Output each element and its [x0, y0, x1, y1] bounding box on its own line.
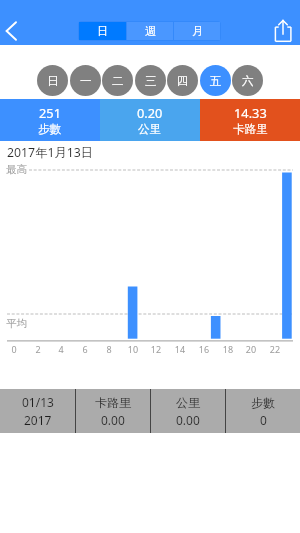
staticText: 日	[97, 24, 108, 38]
button[interactable]: 步數	[226, 389, 300, 433]
staticText: 卡路里	[233, 122, 268, 137]
staticText: 22	[265, 343, 285, 355]
staticText: 18	[218, 343, 238, 355]
staticText: 平均	[6, 317, 27, 330]
staticText: 2	[28, 343, 48, 355]
staticText: 4	[51, 343, 71, 355]
staticText: 月	[192, 24, 203, 38]
button[interactable]: 五	[200, 65, 231, 96]
button[interactable]: 日	[37, 65, 68, 96]
button[interactable]: 週	[127, 22, 173, 40]
staticText: 8	[99, 343, 119, 355]
staticText: 14.33	[234, 104, 267, 121]
staticText: 2017	[24, 412, 52, 428]
staticText: 一	[80, 74, 92, 88]
staticText: 0.00	[101, 412, 125, 428]
staticText: 0	[260, 412, 267, 428]
staticText: 14	[170, 343, 190, 355]
button[interactable]: Back	[0, 13, 26, 41]
button[interactable]: 0.20	[100, 99, 200, 141]
staticText: 六	[242, 74, 254, 88]
staticText: 20	[241, 343, 261, 355]
button[interactable]: Share	[267, 13, 300, 45]
staticText: 0	[4, 343, 24, 355]
button[interactable]: 六	[232, 65, 263, 96]
button[interactable]: 14.33	[200, 99, 300, 141]
button[interactable]: 一	[70, 65, 101, 96]
button[interactable]: 251	[0, 99, 100, 141]
staticText: 0.20	[137, 104, 163, 121]
staticText: 16	[194, 343, 214, 355]
staticText: 最高	[6, 163, 27, 176]
staticText: 251	[39, 104, 61, 121]
staticText: 二	[112, 74, 124, 88]
button[interactable]: 公里	[151, 389, 225, 433]
staticText: 10	[123, 343, 143, 355]
staticText: 五	[210, 74, 222, 88]
button[interactable]: 月	[174, 22, 220, 40]
button[interactable]: 日	[79, 22, 126, 40]
staticText: 三	[145, 74, 157, 88]
staticText: 步數	[251, 395, 275, 410]
button[interactable]: 四	[167, 65, 198, 96]
staticText: 0.00	[176, 412, 200, 428]
staticText: 日	[47, 74, 59, 88]
staticText: 2017年1月13日	[7, 144, 94, 161]
button[interactable]: 三	[135, 65, 166, 96]
staticText: 卡路里	[95, 395, 131, 410]
button[interactable]: 二	[102, 65, 133, 96]
staticText: 01/13	[22, 394, 54, 410]
staticText: 公里	[138, 122, 162, 137]
staticText: 12	[146, 343, 166, 355]
staticText: 6	[75, 343, 95, 355]
staticText: 四	[177, 74, 189, 88]
button[interactable]: 01/13	[0, 389, 75, 433]
staticText: 步數	[38, 122, 62, 137]
button[interactable]: 卡路里	[76, 389, 150, 433]
staticText: 週	[145, 24, 156, 38]
staticText: 公里	[176, 395, 200, 410]
